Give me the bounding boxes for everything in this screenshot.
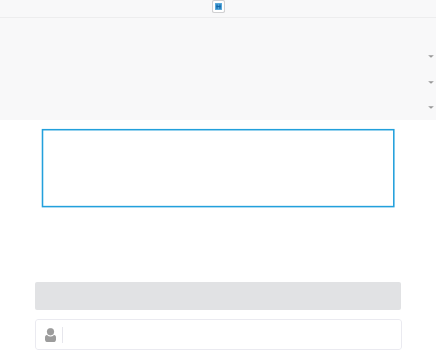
button[interactable]: Expand section three <box>425 101 436 113</box>
button[interactable]: Expand section one <box>425 50 436 62</box>
button[interactable]: Selected content area <box>41 128 395 208</box>
button[interactable]: Username input field <box>35 319 402 350</box>
button[interactable]: App icon <box>210 0 227 15</box>
button[interactable]: Expand section two <box>425 76 436 88</box>
